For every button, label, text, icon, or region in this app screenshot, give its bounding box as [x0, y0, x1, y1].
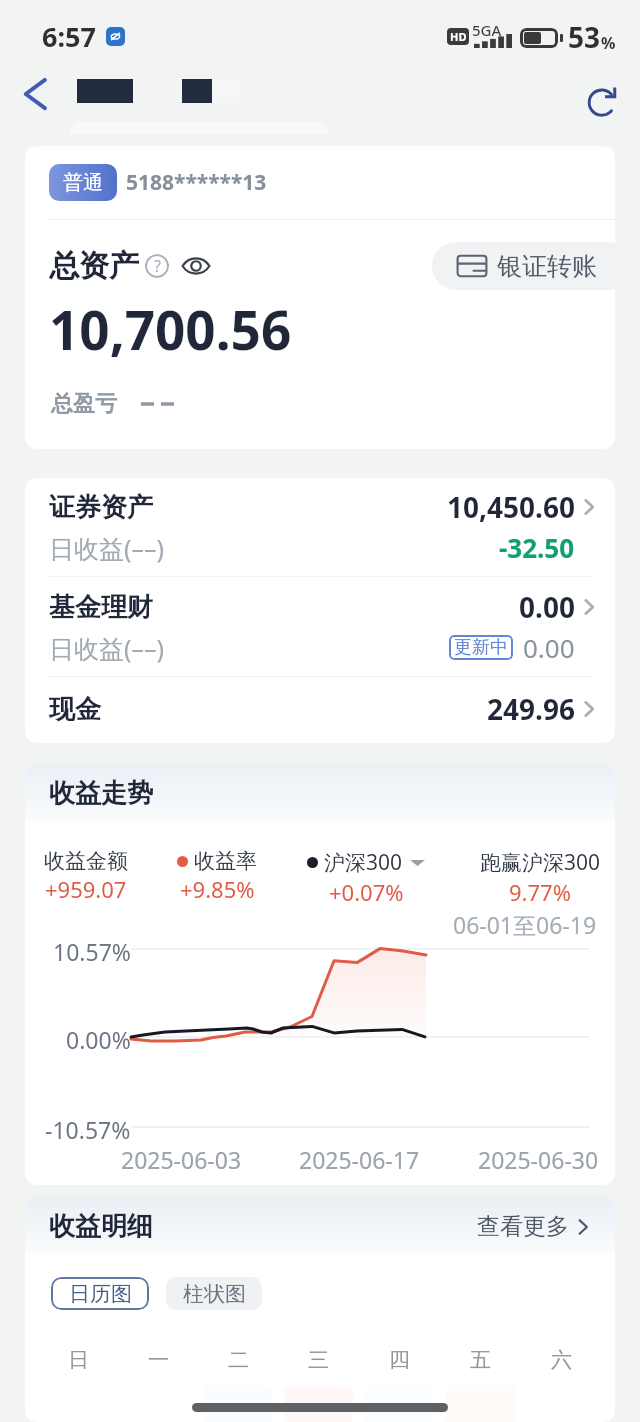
staticText: 收益金额: [44, 848, 128, 874]
staticText: 0.00: [519, 588, 575, 626]
staticText: 更新中: [454, 636, 508, 659]
staticText: 收益明细: [49, 1210, 153, 1243]
button[interactable]: 银证转账: [432, 242, 615, 290]
staticText: HD: [450, 29, 467, 44]
staticText: 06-01至06-19: [453, 909, 597, 940]
staticText: -32.50: [499, 530, 575, 565]
staticText: 9.77%: [509, 877, 571, 907]
staticText: 0.00%: [66, 1024, 131, 1055]
staticText: +9.85%: [180, 874, 255, 904]
button[interactable]: Help: [145, 254, 169, 278]
staticText: 现金: [49, 693, 101, 726]
staticText: 日收益(––): [49, 531, 165, 565]
staticText: 沪深300: [324, 848, 403, 877]
staticText: 一: [148, 1347, 169, 1373]
staticText: 2025-06-17: [299, 1144, 420, 1175]
staticText: 收益率: [194, 848, 257, 874]
button[interactable]: Toggle visibility: [181, 251, 211, 281]
staticText: 5GA: [472, 20, 502, 40]
staticText: 收益走势: [49, 777, 153, 810]
staticText: 10.57%: [53, 936, 131, 967]
staticText: 柱状图: [183, 1281, 246, 1307]
button[interactable]: 柱状图: [166, 1277, 262, 1310]
staticText: 三: [308, 1347, 329, 1373]
staticText: 53: [568, 18, 601, 56]
staticText: 普通: [63, 170, 103, 195]
staticText: 六: [551, 1347, 572, 1373]
staticText: 跑赢沪深300: [480, 848, 601, 877]
button[interactable]: Back: [15, 74, 55, 114]
staticText: 银证转账: [497, 251, 597, 282]
staticText: 证券资产: [49, 491, 153, 524]
staticText: 2025-06-30: [478, 1144, 599, 1175]
staticText: +0.07%: [329, 877, 404, 907]
button[interactable]: 证券资产: [25, 478, 615, 576]
staticText: 249.96: [487, 690, 575, 728]
staticText: 二: [228, 1347, 249, 1373]
button[interactable]: Refresh: [580, 79, 626, 125]
staticText: 10,450.60: [447, 488, 575, 526]
button[interactable]: 日历图: [51, 1277, 149, 1310]
staticText: 2025-06-03: [121, 1144, 242, 1175]
staticText: 5188******13: [126, 168, 267, 197]
staticText: 日收益(––): [49, 631, 165, 665]
staticText: -10.57%: [45, 1114, 131, 1145]
staticText: 五: [470, 1347, 491, 1373]
staticText: %: [601, 32, 616, 54]
staticText: 总资产: [49, 247, 139, 285]
staticText: 查看更多: [477, 1212, 569, 1241]
staticText: +959.07: [45, 874, 127, 904]
staticText: 四: [389, 1347, 410, 1373]
staticText: 日历图: [69, 1281, 132, 1307]
button[interactable]: 现金: [25, 677, 615, 743]
staticText: 日: [68, 1347, 89, 1373]
staticText: 0.00: [523, 630, 575, 665]
staticText: ?: [154, 255, 161, 277]
staticText: 基金理财: [49, 591, 153, 624]
button[interactable]: 查看更多: [473, 1208, 599, 1245]
staticText: 总盈亏: [51, 390, 117, 418]
staticText: 6:57: [42, 18, 96, 55]
staticText: 10,700.56: [49, 293, 292, 365]
button[interactable]: 基金理财: [25, 577, 615, 676]
